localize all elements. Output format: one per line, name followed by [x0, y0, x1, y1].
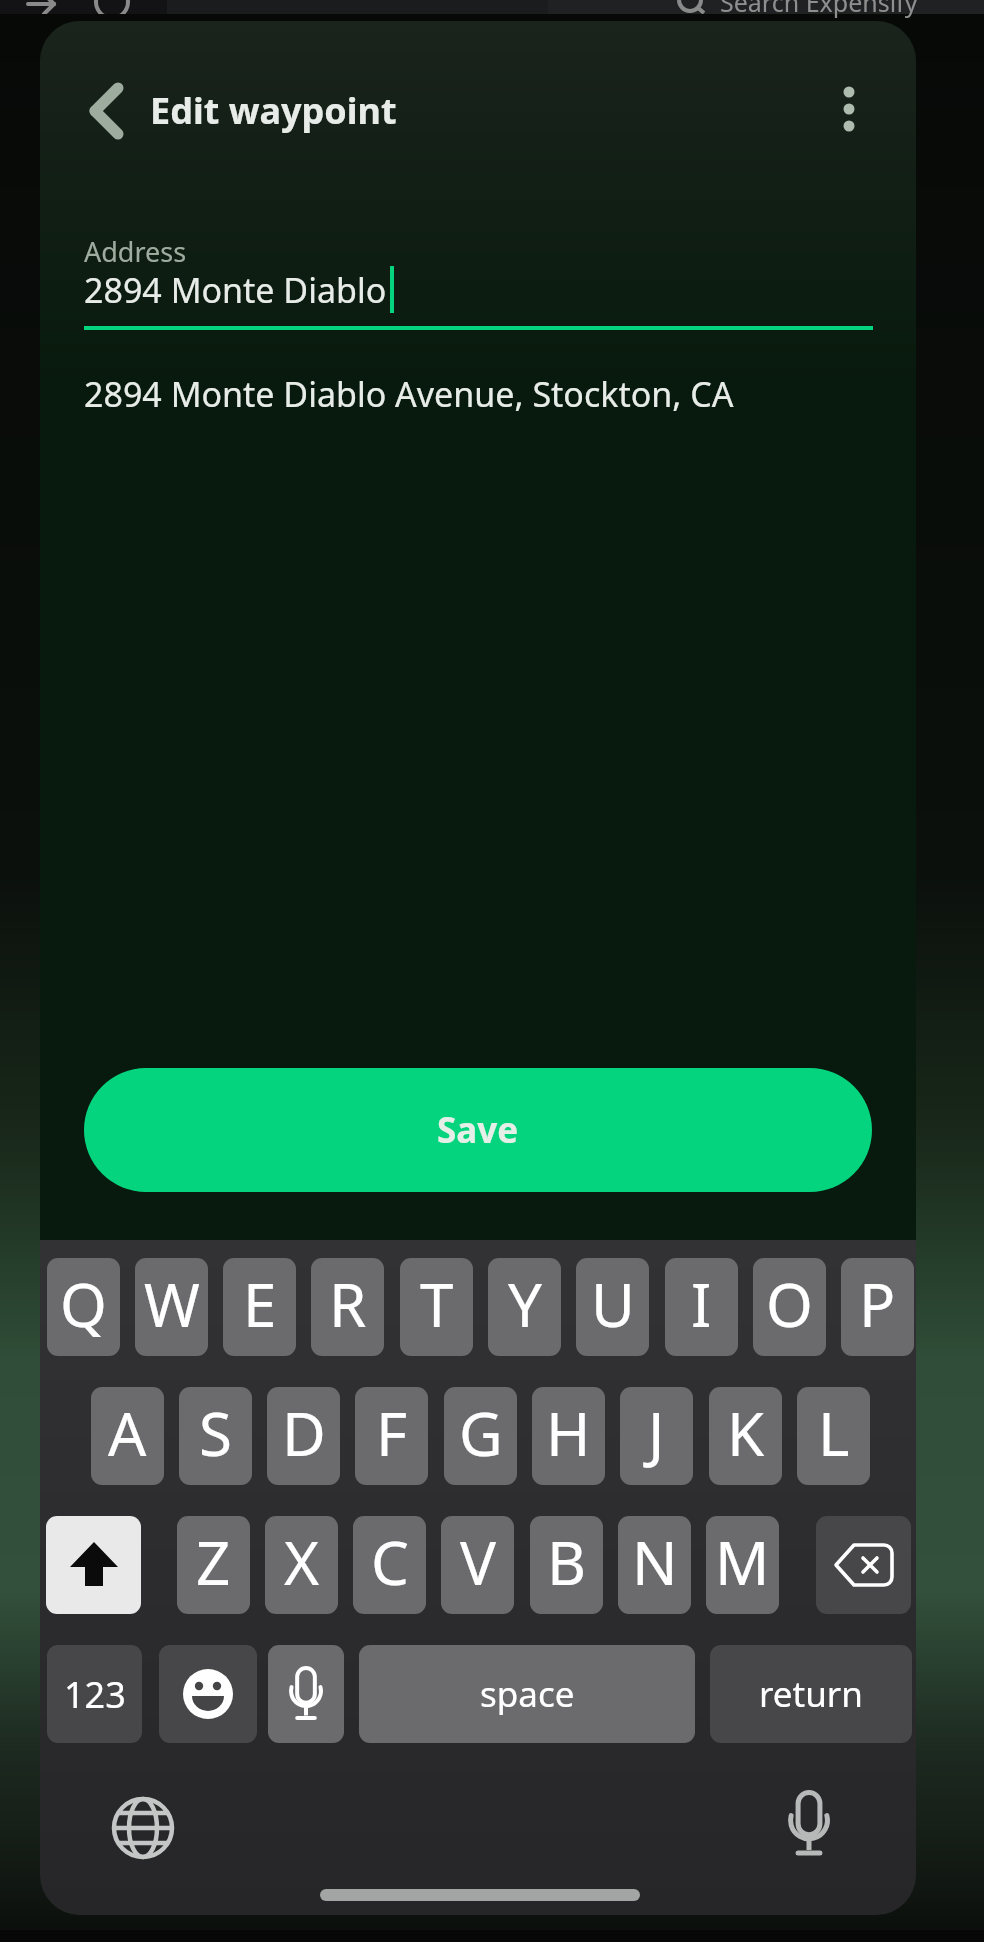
staticText: F	[376, 1392, 408, 1474]
staticText: E	[243, 1263, 277, 1345]
staticText: I	[691, 1263, 712, 1345]
staticText: 123	[64, 1670, 126, 1719]
button[interactable]	[112, 1797, 174, 1859]
staticText: V	[460, 1521, 496, 1603]
button[interactable]: space	[359, 1645, 695, 1743]
staticText: T	[420, 1263, 454, 1345]
staticText: 2894 Monte Diablo	[84, 267, 387, 313]
staticText: Address	[84, 233, 187, 270]
staticText: return	[759, 1670, 863, 1718]
button[interactable]: Z	[177, 1516, 250, 1614]
button[interactable]: K	[709, 1387, 782, 1485]
staticText: Z	[196, 1521, 231, 1603]
staticText: P	[859, 1263, 896, 1345]
button[interactable]: J	[620, 1387, 693, 1485]
staticText: Save	[437, 1106, 519, 1154]
staticText: B	[547, 1521, 586, 1603]
button[interactable]: U	[576, 1258, 649, 1356]
staticText: L	[818, 1392, 850, 1474]
button[interactable]: return	[710, 1645, 912, 1743]
button[interactable]: R	[311, 1258, 384, 1356]
button[interactable]	[159, 1645, 257, 1743]
button[interactable]: H	[532, 1387, 605, 1485]
staticText: space	[480, 1670, 575, 1718]
button[interactable]: O	[753, 1258, 826, 1356]
staticText: A	[108, 1392, 147, 1474]
button[interactable]	[88, 84, 128, 138]
button[interactable]: L	[797, 1387, 870, 1485]
button[interactable]: W	[135, 1258, 208, 1356]
button[interactable]: M	[706, 1516, 779, 1614]
staticText: J	[648, 1392, 665, 1474]
staticText: U	[591, 1263, 635, 1345]
staticText: Y	[508, 1263, 542, 1345]
button[interactable]	[788, 1790, 840, 1862]
staticText: N	[632, 1521, 678, 1603]
staticText: M	[715, 1521, 770, 1603]
button[interactable]: Y	[488, 1258, 561, 1356]
button[interactable]: T	[400, 1258, 473, 1356]
button[interactable]	[46, 1516, 141, 1614]
button[interactable]: Q	[47, 1258, 120, 1356]
staticText: Search Expensify	[720, 0, 918, 19]
button[interactable]: G	[444, 1387, 517, 1485]
button[interactable]: E	[223, 1258, 296, 1356]
button[interactable]: Save	[84, 1068, 872, 1192]
button[interactable]	[816, 1516, 911, 1614]
button[interactable]: 2894 Monte Diablo Avenue, Stockton, CA	[84, 371, 734, 421]
button[interactable]: A	[91, 1387, 164, 1485]
button[interactable]: X	[265, 1516, 338, 1614]
button[interactable]: D	[267, 1387, 340, 1485]
button[interactable]: C	[353, 1516, 426, 1614]
button[interactable]: S	[179, 1387, 252, 1485]
button[interactable]: B	[530, 1516, 603, 1614]
button[interactable]: 123	[47, 1645, 142, 1743]
button[interactable]: F	[355, 1387, 428, 1485]
button[interactable]: P	[841, 1258, 914, 1356]
staticText: K	[727, 1392, 765, 1474]
staticText: Q	[60, 1263, 107, 1345]
button[interactable]: I	[665, 1258, 738, 1356]
button[interactable]: V	[441, 1516, 514, 1614]
staticText: X	[284, 1521, 320, 1603]
staticText: D	[282, 1392, 326, 1474]
staticText: O	[766, 1263, 813, 1345]
staticText: H	[546, 1392, 591, 1474]
staticText: 2894 Monte Diablo Avenue, Stockton, CA	[84, 371, 734, 417]
staticText: R	[329, 1263, 367, 1345]
staticText: C	[371, 1521, 409, 1603]
button[interactable]: N	[618, 1516, 691, 1614]
button[interactable]	[268, 1645, 344, 1743]
staticText: S	[199, 1392, 232, 1474]
staticText: Edit waypoint	[150, 86, 397, 135]
staticText: G	[459, 1392, 503, 1474]
staticText: W	[144, 1263, 200, 1345]
button[interactable]	[828, 81, 870, 141]
